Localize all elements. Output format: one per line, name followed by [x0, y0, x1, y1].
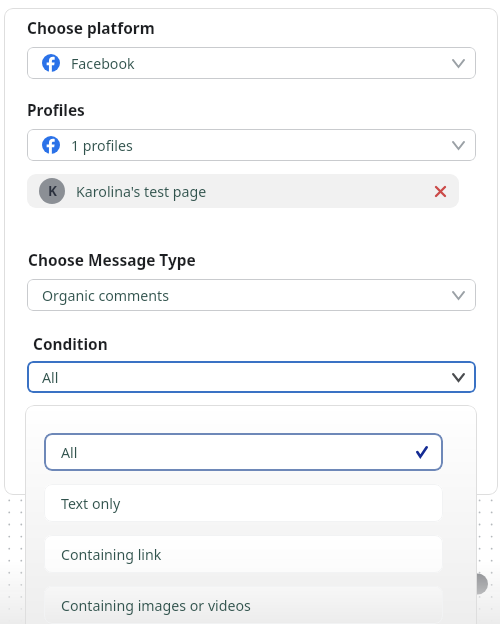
button[interactable]: 1 profiles — [27, 129, 476, 161]
staticText: Text only — [61, 494, 428, 513]
staticText: K — [48, 182, 57, 200]
staticText: Facebook — [71, 54, 452, 73]
staticText: Organic comments — [42, 286, 452, 305]
staticText: Choose Message Type — [28, 250, 196, 271]
button[interactable]: Remove profile — [433, 184, 447, 198]
staticText: Containing link — [61, 545, 428, 564]
staticText: Profiles — [27, 100, 85, 121]
button[interactable]: All — [27, 361, 476, 393]
button[interactable]: Facebook — [27, 47, 476, 79]
staticText: Condition — [33, 334, 108, 355]
staticText: Choose platform — [27, 18, 155, 39]
button[interactable]: Text only — [44, 484, 443, 522]
button[interactable]: Organic comments — [27, 279, 476, 311]
staticText: Karolina's test page — [76, 182, 433, 201]
button[interactable]: All — [44, 433, 443, 471]
staticText: All — [61, 443, 416, 462]
button[interactable]: Containing images or videos — [44, 586, 443, 624]
staticText: All — [42, 368, 452, 387]
button[interactable]: K — [27, 174, 459, 208]
staticText: Containing images or videos — [61, 596, 428, 615]
button[interactable]: Containing link — [44, 535, 443, 573]
staticText: 1 profiles — [71, 136, 452, 155]
